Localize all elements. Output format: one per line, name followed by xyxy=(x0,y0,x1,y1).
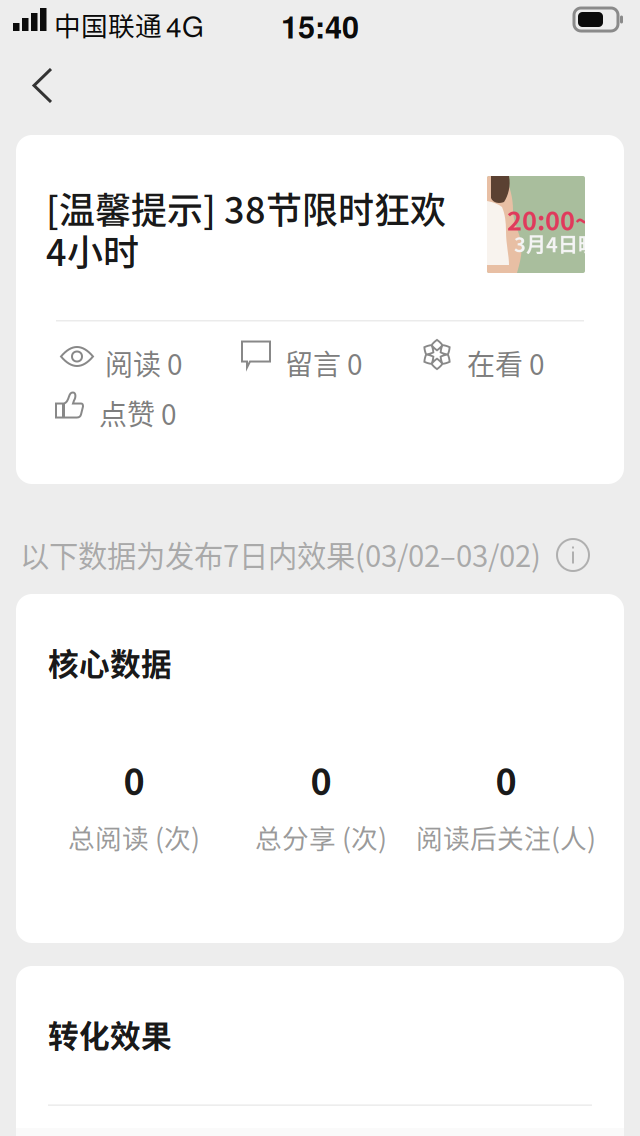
staticText: [温馨提示] 38节限时狂欢4小时 xyxy=(46,182,446,276)
staticText: 总分享 (次) xyxy=(255,817,387,856)
button[interactable]: 在看 0 xyxy=(422,339,572,371)
staticText: 留言 0 xyxy=(285,342,363,383)
staticText: 阅读 0 xyxy=(105,342,183,383)
button[interactable]: 点赞 0 xyxy=(54,389,204,421)
staticText: 核心数据 xyxy=(48,640,172,684)
staticText: 20:00~2 xyxy=(507,201,605,238)
staticText: 中国联通 xyxy=(54,5,162,44)
staticText: 0 xyxy=(310,753,331,805)
staticText: 3月4日晚 xyxy=(514,229,598,258)
staticText: 总阅读 (次) xyxy=(68,817,200,856)
staticText: 点赞 0 xyxy=(99,392,177,433)
staticText: 0 xyxy=(123,753,144,805)
staticText: 0 xyxy=(495,753,516,805)
button[interactable]: About these statistics xyxy=(548,530,598,580)
staticText: 转化效果 xyxy=(48,1012,172,1056)
staticText: 4G xyxy=(166,5,204,45)
button[interactable]: 留言 0 xyxy=(240,339,390,371)
staticText: 15:40 xyxy=(281,4,359,48)
button[interactable]: Back xyxy=(0,49,79,128)
staticText: 在看 0 xyxy=(467,342,545,383)
staticText: 以下数据为发布7日内效果(03/02–03/02) xyxy=(20,533,541,575)
button[interactable]: 阅读 0 xyxy=(60,339,210,371)
staticText: 阅读后关注(人) xyxy=(416,817,596,856)
